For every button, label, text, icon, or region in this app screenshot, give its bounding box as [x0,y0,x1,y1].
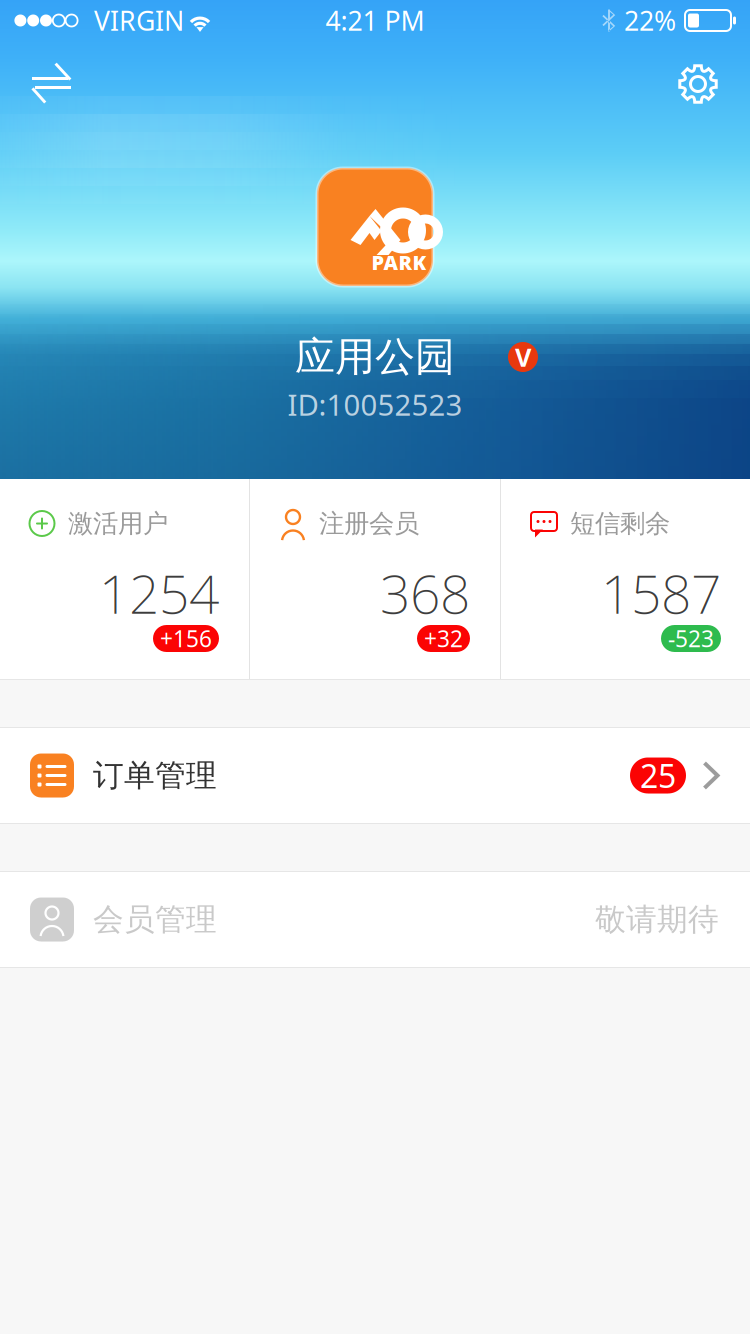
staticText: 368 [380,558,470,628]
button[interactable]: Settings [667,53,729,115]
staticText: 22% [624,3,676,38]
staticText: 4:21 PM [325,3,424,38]
staticText: 25 [640,754,676,797]
staticText: ID:10052523 [287,385,462,424]
staticText: -523 [668,623,714,653]
staticText: 1254 [99,558,219,628]
staticText: V [515,340,531,374]
staticText: 短信剩余 [570,508,670,539]
button[interactable]: 订单管理 [0,728,750,823]
staticText: 会员管理 [93,901,217,938]
staticText: 激活用户 [68,508,168,539]
staticText: 应用公园 [295,332,455,381]
staticText: +32 [424,623,463,653]
button[interactable]: Switch account [21,53,83,115]
staticText: 敬请期待 [595,901,719,938]
staticText: 注册会员 [319,508,419,539]
staticText: 订单管理 [93,757,217,794]
staticText: +156 [160,623,212,653]
staticText: VIRGIN [94,3,184,38]
staticText: PARK [371,249,426,276]
staticText: 1587 [601,558,721,628]
